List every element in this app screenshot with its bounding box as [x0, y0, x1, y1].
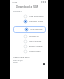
- button[interactable]: Google Fi Wireless: [10, 34, 48, 39]
- staticText: Choose a carrier: [13, 10, 25, 13]
- staticText: Google Fi Wireless: [29, 35, 46, 38]
- staticText: Add activation code: [29, 15, 46, 18]
- button[interactable]: Mint Mobile: [10, 39, 48, 44]
- staticText: Visible plan: [29, 50, 46, 53]
- staticText: Mint Mobile: [29, 40, 46, 43]
- staticText: Boost Mobile plan: [29, 45, 46, 48]
- staticText: Use existing plan: [30, 28, 46, 31]
- button[interactable]: Boost Mobile plan: [10, 44, 48, 49]
- staticText: Transfer from phone: [29, 20, 46, 23]
- staticText: 12:30: [12, 1, 18, 4]
- button[interactable]: Scan QR code: [43, 63, 45, 65]
- button[interactable]: Transfer from phone: [10, 19, 48, 24]
- staticText: Scan a QR code: [13, 59, 27, 62]
- staticText: from carrier: [13, 61, 24, 64]
- staticText: Need help with this?: [13, 56, 32, 59]
- staticText: Recommended: [30, 31, 45, 33]
- button[interactable]: Add activation code: [10, 14, 48, 19]
- button[interactable]: Visible plan: [10, 49, 48, 54]
- button[interactable]: Use existing plan: [13, 26, 46, 33]
- staticText: Download a SIM: [16, 5, 44, 9]
